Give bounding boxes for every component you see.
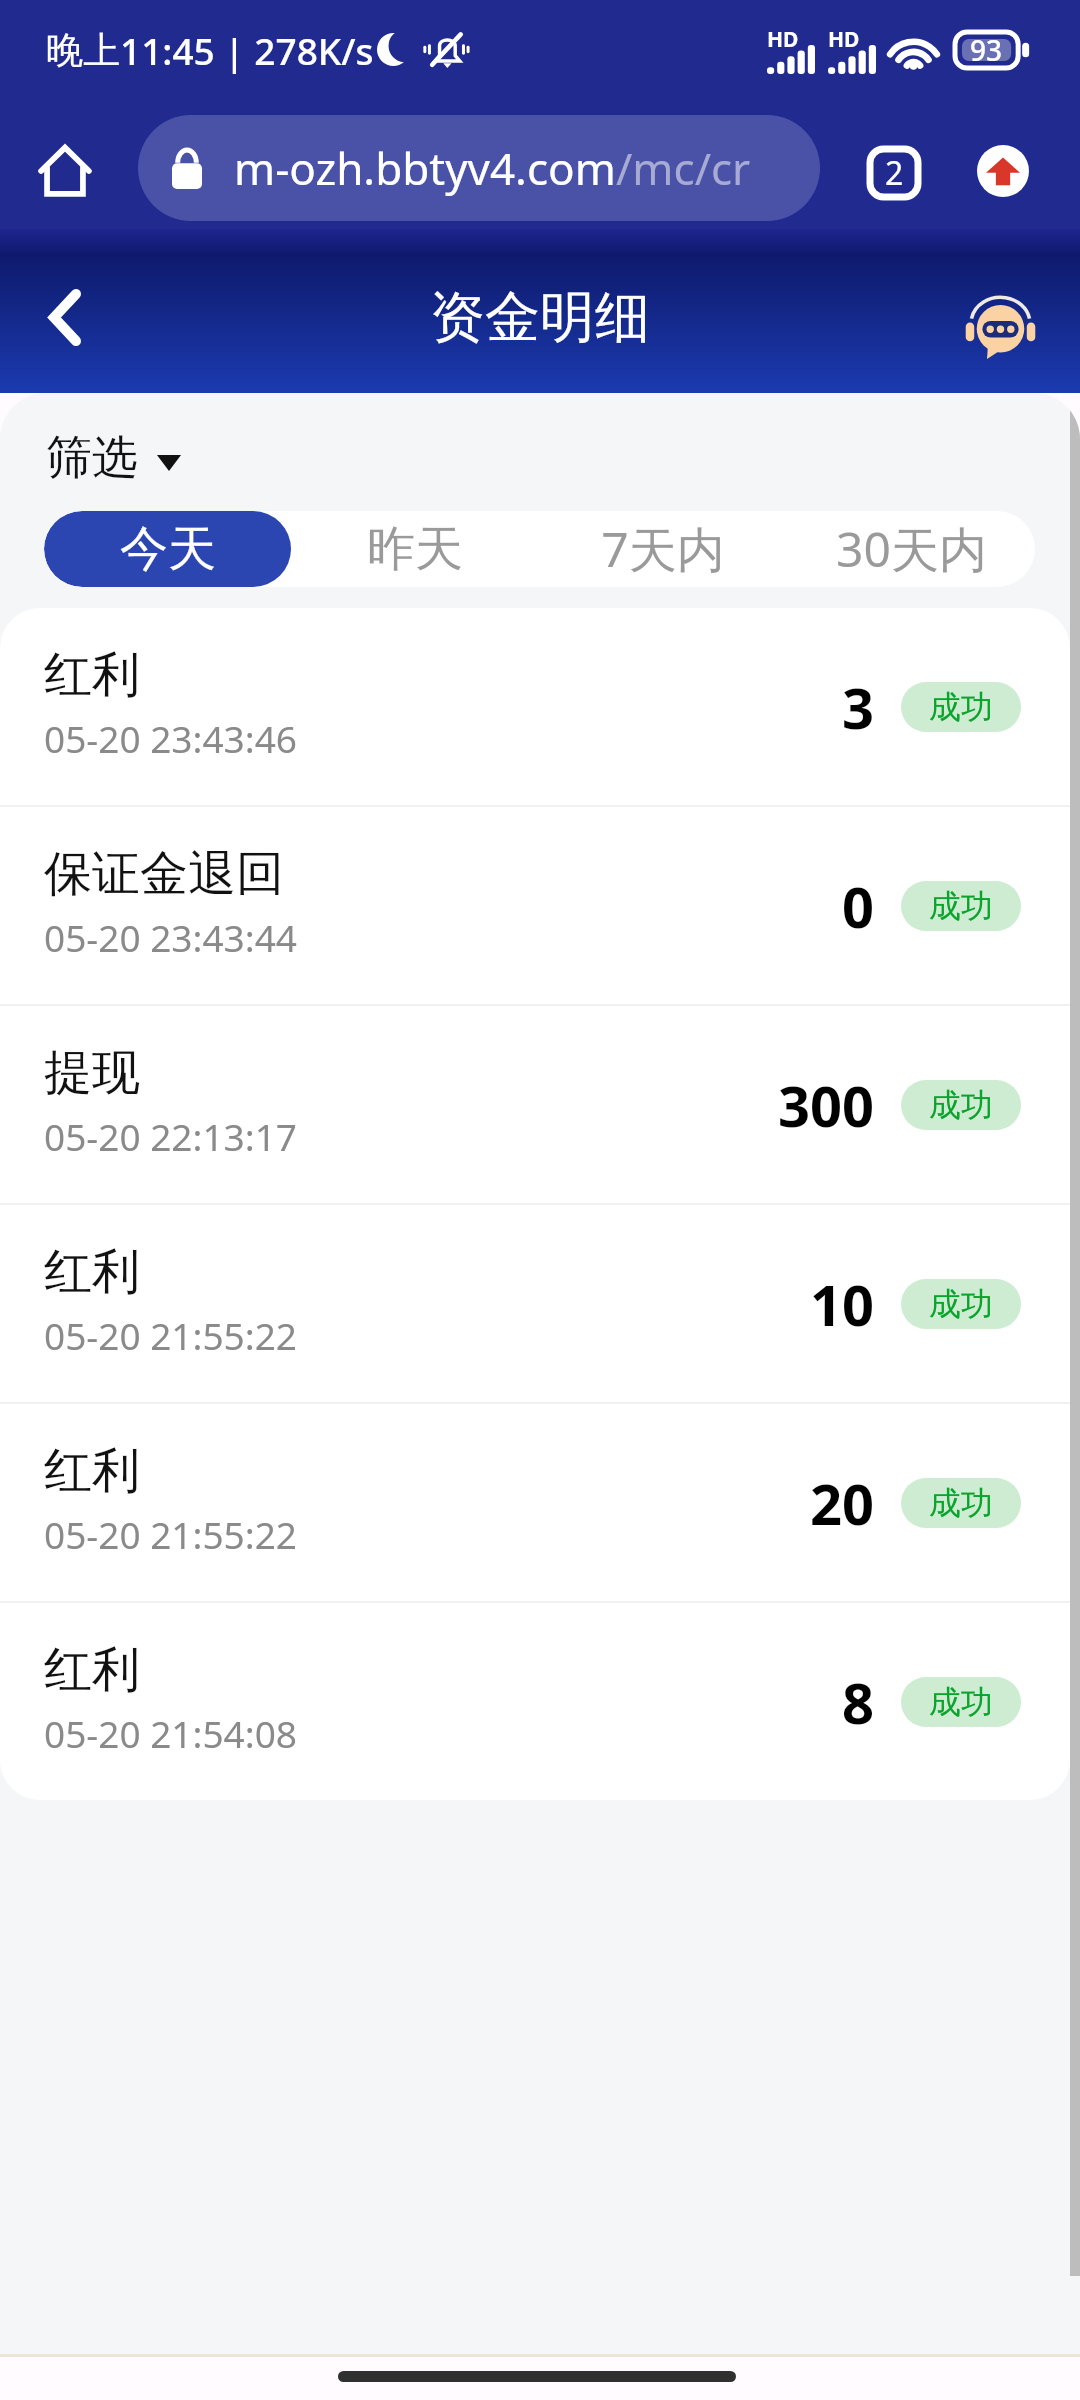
staticText: 筛选 [46,429,138,487]
staticText: 300 [778,1067,875,1143]
staticText: 10 [810,1266,875,1342]
staticText: 成功 [929,1284,993,1324]
staticText: 保证金退回 [44,844,284,904]
staticText: HD [767,25,799,54]
staticText: 红利 [44,1441,140,1501]
button[interactable]: Share [966,134,1040,208]
staticText: 资金明细 [430,283,650,352]
staticText: 提现 [44,1043,140,1103]
staticText: 昨天 [367,519,463,579]
staticText: 成功 [929,1682,993,1722]
button[interactable]: 红利 [0,1603,1070,1800]
staticText: 05-20 21:55:22 [44,1310,298,1360]
staticText: 05-20 21:54:08 [44,1708,298,1758]
staticText: 红利 [44,1640,140,1700]
staticText: 8 [842,1664,875,1740]
staticText: m-ozh.bbtyv4.com [234,138,616,198]
button[interactable]: 红利 [0,1205,1070,1402]
staticText: 成功 [929,886,993,926]
button[interactable]: 保证金退回 [0,807,1070,1004]
staticText: 3 [842,669,875,745]
button[interactable]: Customer service [950,277,1050,377]
staticText: 成功 [929,687,993,727]
button[interactable]: 红利 [0,1404,1070,1601]
staticText: 30天内 [836,516,987,582]
staticText: 0 [842,868,875,944]
button[interactable]: Tabs [856,135,932,211]
staticText: 成功 [929,1085,993,1125]
staticText: 今天 [120,519,216,579]
button[interactable]: Home [22,128,108,214]
button[interactable]: m-ozh.bbtyv4.com [138,115,820,221]
staticText: 7天内 [601,516,725,582]
staticText: 93 [970,31,1003,69]
button[interactable]: 7天内 [539,511,787,587]
staticText: 红利 [44,645,140,705]
staticText: 05-20 23:43:46 [44,713,298,763]
button[interactable]: Back [15,267,115,367]
staticText: 2 [885,151,904,195]
button[interactable]: 筛选 [46,405,181,511]
button[interactable]: 今天 [44,511,291,587]
button[interactable]: 红利 [0,608,1070,805]
staticText: /mc/cr [616,138,751,198]
button[interactable]: 提现 [0,1006,1070,1203]
button[interactable]: 30天内 [787,511,1035,587]
button[interactable]: 昨天 [291,511,539,587]
staticText: 11:45 | 278K/s [120,25,374,75]
staticText: 05-20 23:43:44 [44,912,298,962]
staticText: 晚上 [46,27,120,74]
staticText: 20 [810,1465,875,1541]
staticText: 成功 [929,1483,993,1523]
staticText: 05-20 22:13:17 [44,1111,298,1161]
staticText: 红利 [44,1242,140,1302]
staticText: 05-20 21:55:22 [44,1509,298,1559]
staticText: HD [828,25,860,54]
